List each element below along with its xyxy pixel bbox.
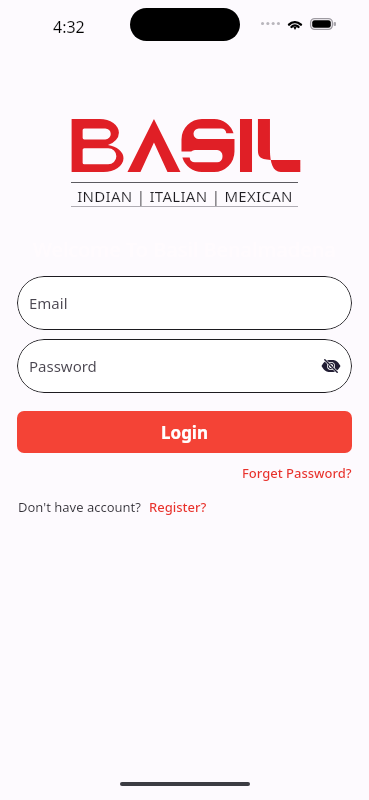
staticText: Don't have account? [18, 498, 141, 516]
button[interactable]: Forget Password? [242, 464, 352, 482]
staticText: INDIAN | ITALIAN | MEXICAN [77, 186, 293, 206]
staticText: Email [29, 293, 68, 313]
button[interactable]: Password [17, 339, 352, 393]
button[interactable]: Register? [149, 498, 207, 516]
button[interactable]: Login [17, 411, 352, 453]
button[interactable]: Show password [313, 348, 349, 384]
staticText: Register? [149, 498, 207, 516]
staticText: 4:32 [53, 16, 85, 38]
button[interactable]: Email [17, 276, 352, 330]
staticText: Forget Password? [242, 464, 352, 482]
staticText: Login [161, 421, 209, 444]
staticText: Password [29, 356, 97, 376]
